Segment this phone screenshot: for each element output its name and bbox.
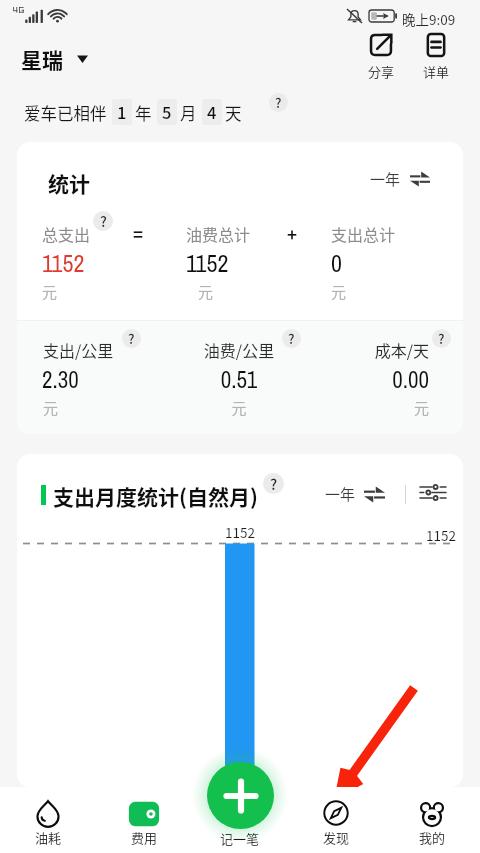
staticText: 爱车已相伴 xyxy=(24,101,107,125)
staticText: 统计 xyxy=(48,168,90,198)
staticText: 年 xyxy=(135,101,152,125)
staticText: 1152 xyxy=(42,247,85,279)
staticText: 元 xyxy=(165,397,313,419)
staticText: 元 xyxy=(269,397,429,419)
button[interactable]: 星瑞 xyxy=(21,44,88,74)
button[interactable]: 筛选 xyxy=(420,485,446,500)
staticText: ? xyxy=(438,329,445,348)
staticText: 4 xyxy=(207,100,217,124)
staticText: 成本/天 xyxy=(269,338,429,361)
staticText: 1152 xyxy=(303,525,456,545)
staticText: 1152 xyxy=(186,247,229,279)
button[interactable]: 发现 xyxy=(288,787,384,853)
button[interactable]: 记一笔 xyxy=(207,762,274,829)
button[interactable]: 详单 xyxy=(413,33,459,81)
staticText: + xyxy=(287,221,298,246)
staticText: 元 xyxy=(198,281,214,303)
staticText: 分享 xyxy=(368,62,395,81)
button[interactable]: 一年 xyxy=(370,168,430,190)
staticText: 星瑞 xyxy=(21,44,63,74)
staticText: 详单 xyxy=(423,62,450,81)
staticText: 支出月度统计(自然月) xyxy=(53,481,258,511)
staticText: 油耗 xyxy=(35,828,62,847)
staticText: 一年 xyxy=(325,483,356,505)
staticText: ? xyxy=(270,473,278,494)
staticText: 发现 xyxy=(323,828,350,847)
staticText: 我的 xyxy=(419,828,446,847)
staticText: 元 xyxy=(43,397,59,419)
staticText: ? xyxy=(100,211,107,231)
button[interactable]: 一年 xyxy=(325,483,385,505)
staticText: 一年 xyxy=(370,168,401,190)
staticText: 元 xyxy=(42,281,58,303)
staticText: 0.51 xyxy=(165,364,313,395)
staticText: 油费/公里 xyxy=(165,338,313,361)
staticText: 0.00 xyxy=(269,364,429,395)
staticText: 油费总计 xyxy=(186,222,251,245)
staticText: = xyxy=(133,221,144,246)
staticText: 记一笔 xyxy=(220,829,260,848)
staticText: 0 xyxy=(331,247,342,279)
staticText: ? xyxy=(275,93,282,112)
staticText: ? xyxy=(288,329,295,348)
staticText: 费用 xyxy=(131,828,158,847)
staticText: 支出总计 xyxy=(331,222,396,245)
staticText: 元 xyxy=(331,281,347,303)
staticText: 2.30 xyxy=(42,364,79,395)
staticText: 天 xyxy=(225,101,242,125)
staticText: 支出/公里 xyxy=(43,338,114,361)
button[interactable]: 我的 xyxy=(384,787,480,853)
button[interactable]: 费用 xyxy=(96,787,192,853)
staticText: 1 xyxy=(117,100,127,124)
staticText: 5 xyxy=(162,100,172,124)
staticText: 月 xyxy=(180,101,197,125)
staticText: ? xyxy=(128,329,135,348)
button[interactable]: 记一笔 xyxy=(192,787,288,853)
staticText: 总支出 xyxy=(42,222,91,245)
button[interactable]: 分享 xyxy=(358,33,404,81)
staticText: 1152 xyxy=(225,522,255,542)
button[interactable]: 油耗 xyxy=(0,787,96,853)
staticText: 晚上9:09 xyxy=(402,9,456,29)
